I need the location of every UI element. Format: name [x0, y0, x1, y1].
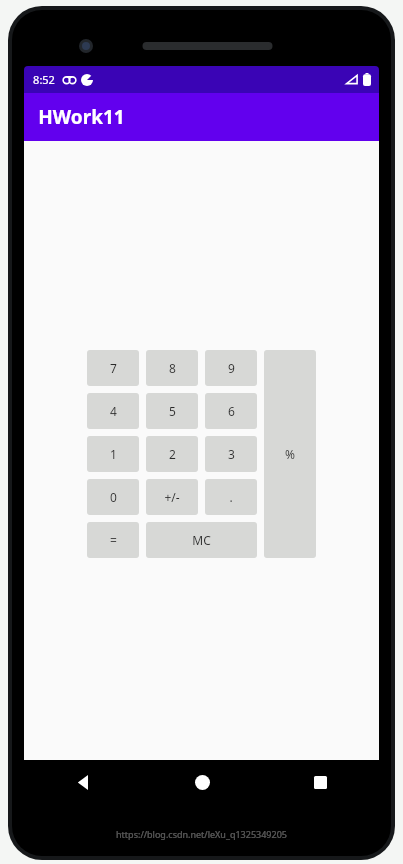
button[interactable]: 0	[87, 479, 139, 515]
staticText: 7	[110, 360, 117, 376]
button[interactable]: 1	[87, 436, 139, 472]
staticText: %	[285, 446, 295, 462]
staticText: .	[229, 489, 233, 505]
button[interactable]: 8	[146, 350, 198, 386]
staticText: 3	[228, 446, 235, 462]
staticText: HWork11	[38, 104, 125, 130]
button[interactable]: =	[87, 522, 139, 558]
staticText: 9	[228, 360, 235, 376]
staticText: 1	[110, 446, 117, 462]
button[interactable]: Back	[24, 760, 143, 804]
button[interactable]: MC	[146, 522, 257, 558]
button[interactable]: 2	[146, 436, 198, 472]
staticText: MC	[192, 532, 211, 548]
staticText: +/-	[164, 489, 180, 505]
button[interactable]: +/-	[146, 479, 198, 515]
staticText: =	[110, 532, 117, 548]
button[interactable]: 6	[205, 393, 257, 429]
staticText: 5	[169, 403, 176, 419]
button[interactable]: %	[264, 350, 316, 558]
staticText: 0	[110, 489, 117, 505]
button[interactable]: 9	[205, 350, 257, 386]
button[interactable]: 5	[146, 393, 198, 429]
staticText: 2	[169, 446, 176, 462]
staticText: 4	[110, 403, 117, 419]
button[interactable]: Home	[143, 760, 261, 804]
button[interactable]: 3	[205, 436, 257, 472]
button[interactable]: 7	[87, 350, 139, 386]
button[interactable]: Recent apps	[261, 760, 379, 804]
button[interactable]: 4	[87, 393, 139, 429]
staticText: 6	[228, 403, 235, 419]
button[interactable]: .	[205, 479, 257, 515]
staticText: 8:52	[33, 72, 55, 87]
staticText: 8	[169, 360, 176, 376]
staticText: https://blog.csdn.net/leXu_q1325349205	[116, 828, 287, 840]
